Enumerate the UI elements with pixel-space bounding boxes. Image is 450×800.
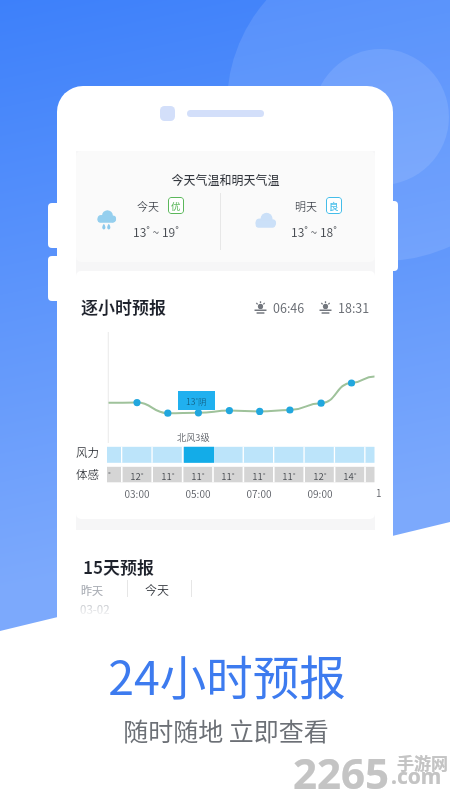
staticText: 03-02 [80,601,110,618]
staticText: 13˚阴 [186,395,207,407]
staticText: 体感 [76,466,99,483]
staticText: 手游网 [397,750,448,775]
button[interactable]: Sunrise [254,298,305,316]
staticText: 2265 [293,744,390,800]
staticText: 18:31 [338,298,370,316]
button[interactable]: 今天气温和明天气温 [76,151,375,262]
staticText: 03:00 [119,486,155,500]
staticText: 风力 [76,444,99,461]
staticText: 北风3级 [177,430,210,443]
staticText: 明天 [295,198,317,214]
staticText: 11˚ [156,469,180,483]
staticText: 13˚ ~ 19˚ [133,223,179,240]
staticText: ˚ [108,469,111,482]
staticText: 12˚ [125,469,149,483]
staticText: 良 [329,199,339,213]
staticText: 24小时预报 [2,641,450,708]
staticText: 11˚ [277,469,301,483]
staticText: 09:00 [302,486,338,500]
staticText: .com [391,762,442,791]
staticText: 优 [171,199,181,213]
staticText: 06:46 [273,298,305,316]
staticText: 11˚ [186,469,210,483]
button[interactable]: Sunset [319,298,370,316]
staticText: 11˚ [247,469,271,483]
button[interactable]: 15天预报 [83,554,155,579]
staticText: 11˚ [216,469,240,483]
staticText: 1 [376,485,382,499]
staticText: 05:00 [180,486,216,500]
staticText: 今天 [137,198,159,214]
staticText: 13˚ ~ 18˚ [291,223,337,240]
staticText: 昨天 [81,582,103,598]
staticText: 随时随地 立即查看 [1,712,450,748]
button[interactable]: 逐小时预报 [81,294,166,319]
staticText: 12˚ [308,469,332,483]
staticText: 14˚ [338,469,362,483]
staticText: 今天 [145,581,170,598]
staticText: 今天气温和明天气温 [76,171,375,188]
staticText: 07:00 [241,486,277,500]
